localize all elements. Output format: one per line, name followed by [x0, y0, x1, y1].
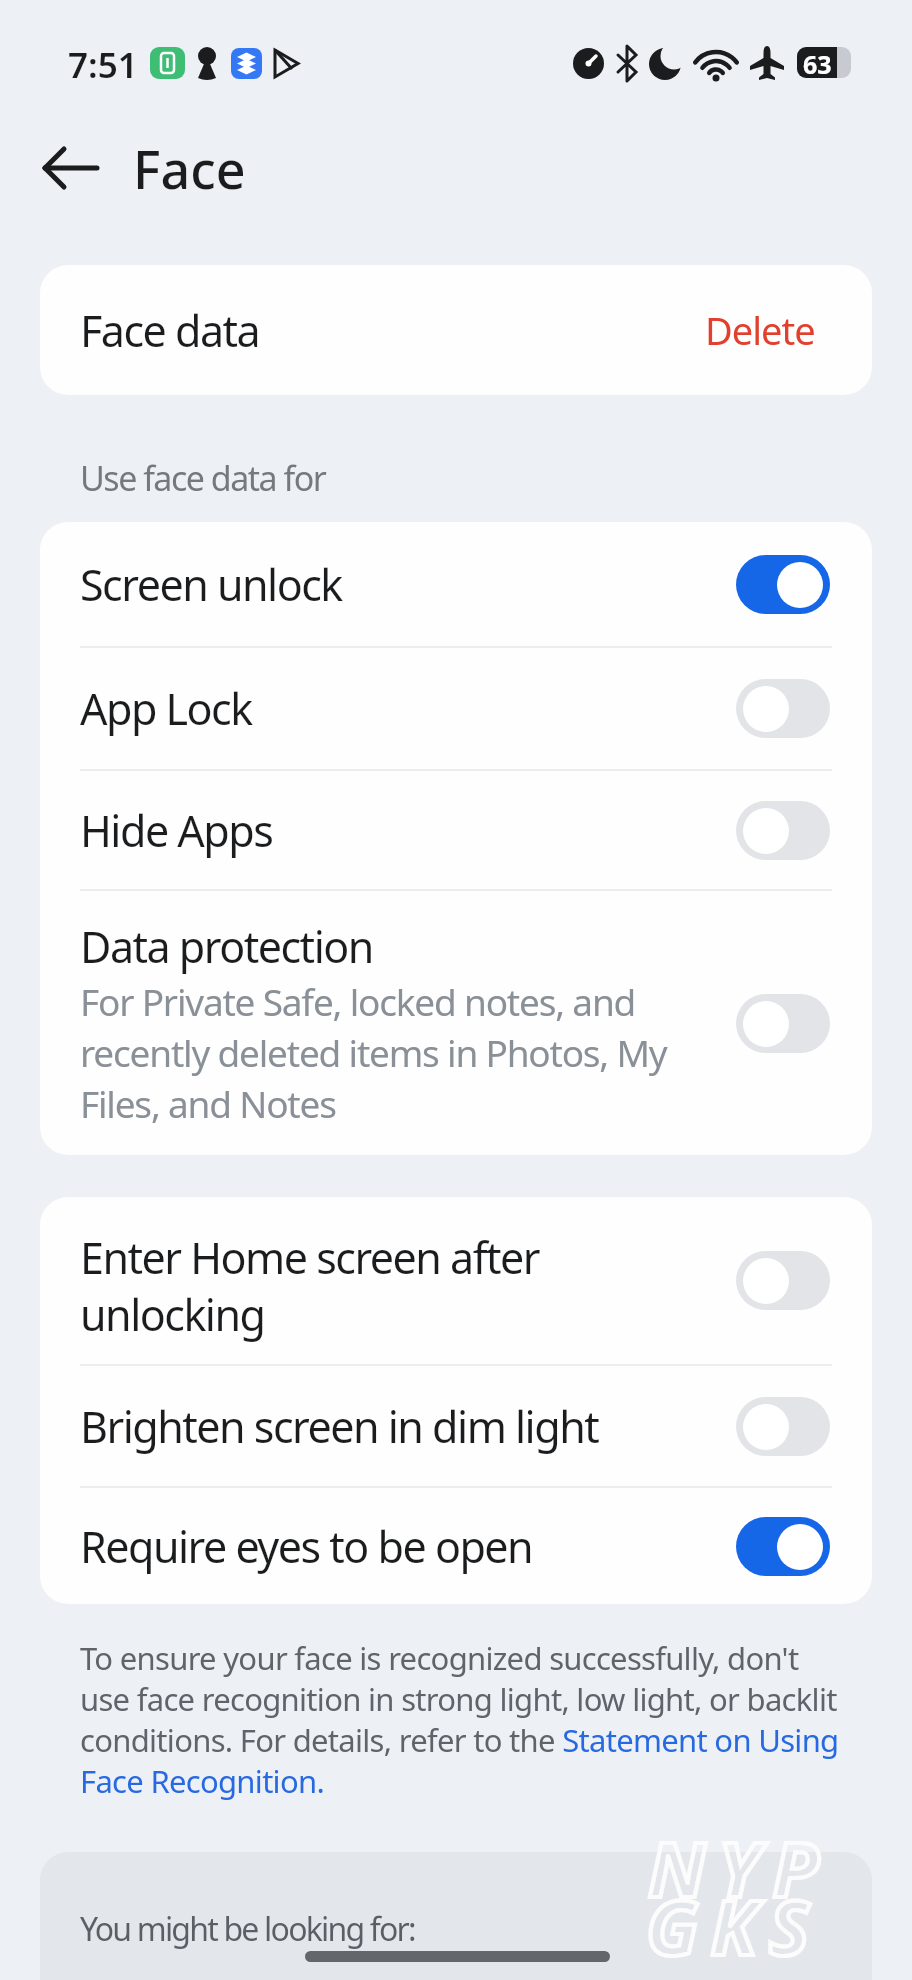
button[interactable]: Face data — [40, 265, 872, 395]
staticText: To ensure your face is recognized succes… — [80, 1637, 799, 1679]
staticText: Require eyes to be open — [80, 1517, 533, 1576]
staticText: conditions. For details, refer to the St… — [80, 1719, 839, 1761]
button[interactable]: Hide Apps — [40, 771, 872, 889]
staticText: 63 — [803, 47, 832, 78]
button[interactable]: Data protection — [40, 891, 872, 1155]
staticText: You might be looking for: — [80, 1907, 415, 1951]
staticText: Enter Home screen after unlocking — [80, 1228, 736, 1343]
staticText: Brighten screen in dim light — [80, 1397, 599, 1456]
button[interactable] — [736, 1397, 830, 1456]
staticText: use face recognition in strong light, lo… — [80, 1678, 837, 1720]
staticText: Use face data for — [80, 455, 326, 501]
button[interactable] — [736, 1517, 830, 1576]
staticText: App Lock — [80, 679, 252, 738]
staticText: NYP — [648, 1816, 831, 1920]
button[interactable] — [736, 679, 830, 738]
staticText: Face data — [80, 301, 260, 360]
staticText: Hide Apps — [80, 801, 273, 860]
button[interactable]: Screen unlock — [40, 522, 872, 646]
staticText: Face Recognition. — [80, 1760, 325, 1802]
button[interactable]: Enter Home screen after unlocking — [40, 1197, 872, 1364]
button[interactable]: Require eyes to be open — [40, 1488, 872, 1604]
button[interactable]: You might be looking for: — [40, 1852, 872, 1980]
button[interactable] — [736, 994, 830, 1053]
button[interactable]: App Lock — [40, 648, 872, 769]
staticText: 7:51 — [68, 41, 138, 89]
staticText: Data protection — [80, 917, 373, 976]
staticText: For Private Safe, locked notes, and rece… — [80, 976, 667, 1129]
staticText: Delete — [705, 304, 815, 356]
staticText: Face — [133, 133, 246, 204]
staticText: GKS — [646, 1874, 822, 1978]
button[interactable]: Brighten screen in dim light — [40, 1366, 872, 1486]
staticText: Screen unlock — [80, 555, 342, 614]
button[interactable] — [736, 1251, 830, 1310]
button[interactable] — [736, 555, 830, 614]
button[interactable] — [28, 132, 112, 204]
button[interactable] — [736, 801, 830, 860]
